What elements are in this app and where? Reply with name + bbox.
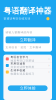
button[interactable]: 立即体验 <box>8 85 48 91</box>
staticText: 请输入要翻译的内容 <box>6 31 33 34</box>
button[interactable]: 常用语速查 <box>3 62 52 69</box>
staticText: 常用语速查 <box>10 62 25 65</box>
staticText: › <box>49 57 50 61</box>
staticText: 普通话粤语在线互译 <box>3 17 30 20</box>
staticText: 立即体验 <box>20 86 36 91</box>
staticText: 生词本收藏 <box>10 69 25 72</box>
staticText: 日常对话即查即用 <box>10 66 34 69</box>
staticText: 粤语翻译神器 <box>3 6 51 16</box>
button[interactable]: 立即翻译 <box>6 36 50 43</box>
staticText: 收藏生词反复练习 <box>10 72 34 75</box>
button[interactable]: 生词本收藏 <box>3 69 52 75</box>
staticText: › <box>49 70 50 74</box>
staticText: 地道粤语口语跟读 <box>10 59 34 62</box>
staticText: 立即翻译 <box>20 37 36 42</box>
staticText: 支持语音 · 拍照 · 文本翻译 <box>6 45 42 49</box>
staticText: › <box>49 64 50 67</box>
staticText: 粤语发音学习 <box>10 55 28 59</box>
button[interactable]: 粤语发音学习 <box>3 56 52 62</box>
